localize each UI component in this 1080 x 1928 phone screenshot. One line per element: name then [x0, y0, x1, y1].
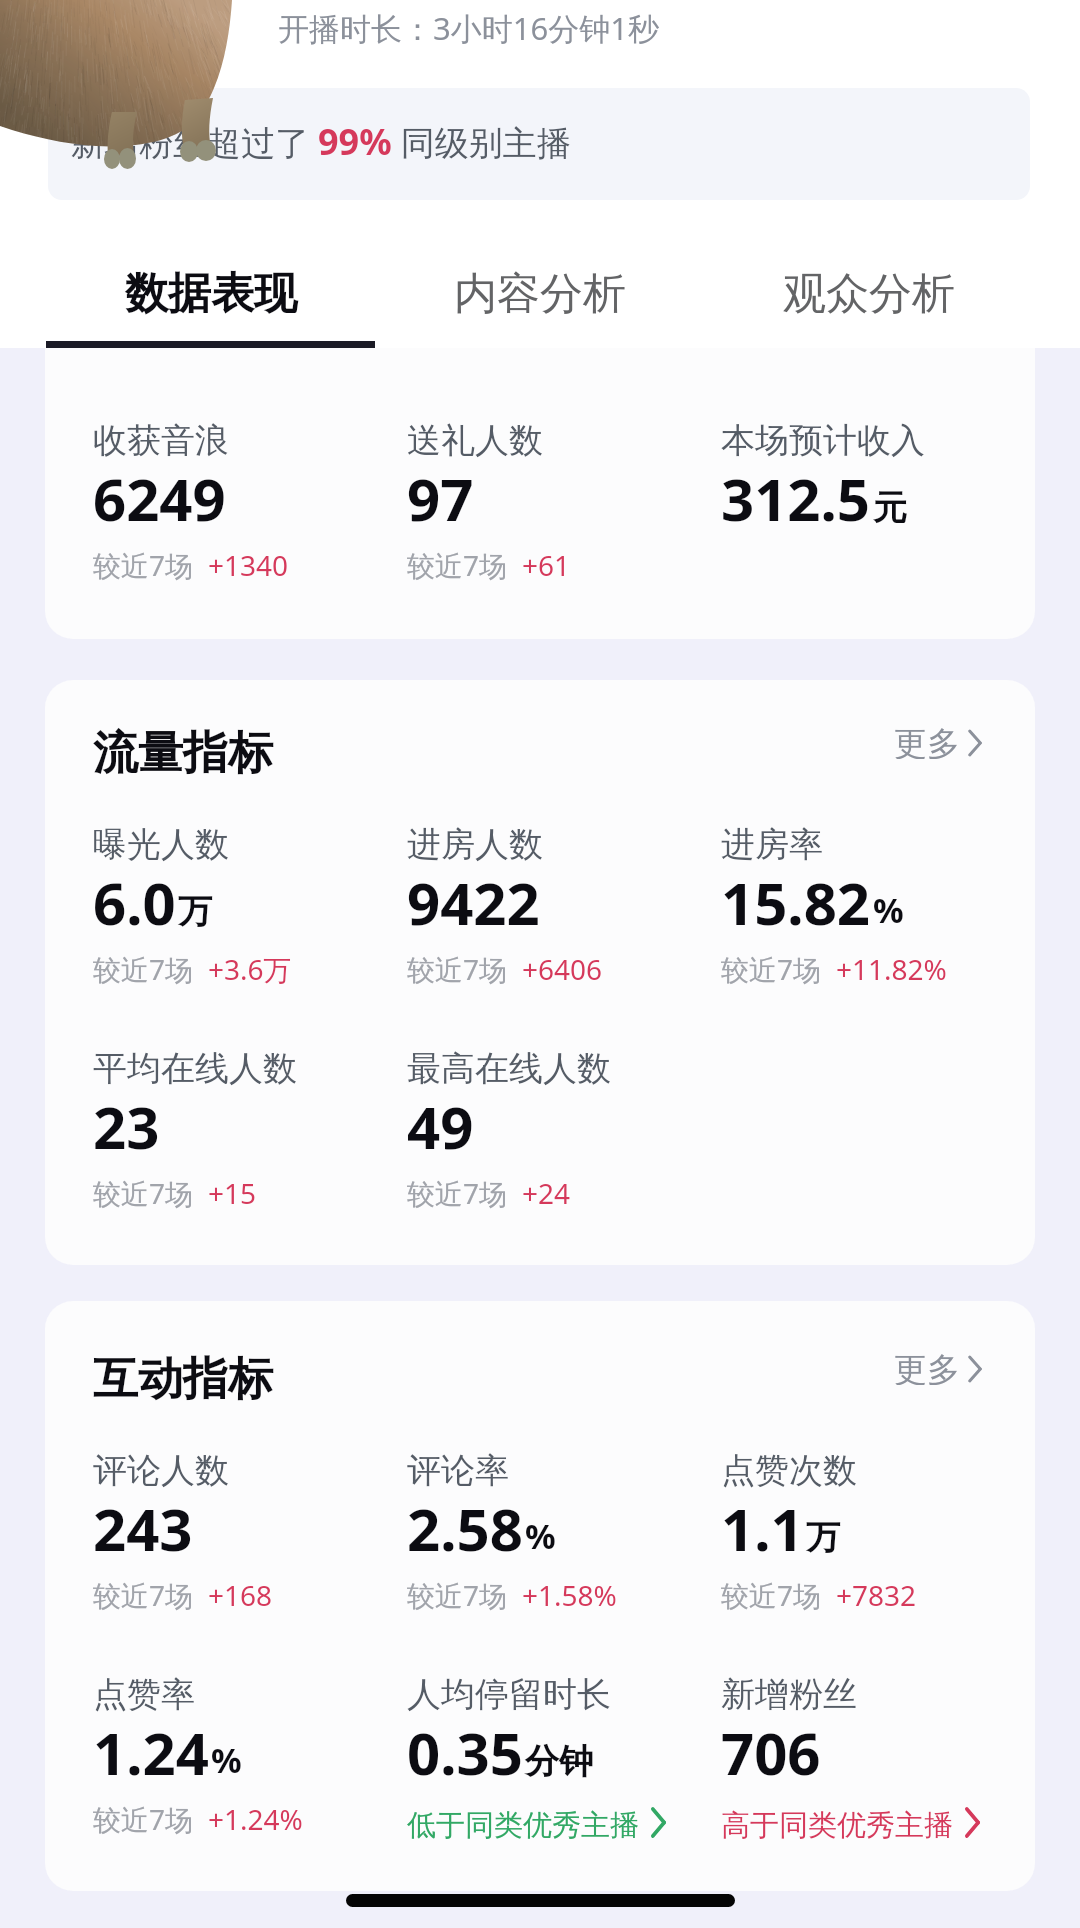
button[interactable]: 更多	[878, 1337, 998, 1397]
staticText: 更多	[894, 1349, 960, 1385]
staticText: 最高在线人数	[407, 1047, 611, 1090]
staticText: %	[525, 1513, 556, 1559]
staticText: 更多	[894, 723, 960, 759]
staticText: 流量指标	[93, 725, 273, 782]
staticText: +168	[208, 1576, 273, 1614]
staticText: 1.1	[721, 1489, 804, 1568]
staticText: 较近7场	[93, 1174, 194, 1212]
button[interactable]: 新增粉丝超过了	[48, 88, 1030, 200]
staticText: 收获音浪	[93, 419, 229, 462]
staticText: 送礼人数	[407, 419, 543, 462]
staticText: 较近7场	[93, 546, 194, 584]
staticText: +61	[522, 546, 571, 584]
staticText: %	[211, 1737, 242, 1783]
staticText: +1.58%	[522, 1576, 617, 1614]
staticText: 15.82	[721, 863, 871, 942]
staticText: 较近7场	[93, 950, 194, 988]
staticText: 706	[721, 1713, 821, 1792]
staticText: 人均停留时长	[407, 1673, 611, 1716]
staticText: 万	[178, 890, 212, 933]
staticText: 较近7场	[93, 1576, 194, 1614]
staticText: 312.5	[721, 459, 871, 538]
staticText: 较近7场	[721, 950, 822, 988]
staticText: 99%	[318, 117, 392, 166]
staticText: %	[873, 887, 904, 933]
staticText: +7832	[836, 1576, 917, 1614]
staticText: 曝光人数	[93, 823, 229, 866]
button[interactable]: 数据表现	[46, 232, 375, 348]
staticText: 49	[407, 1087, 474, 1166]
staticText: 23	[93, 1087, 160, 1166]
staticText: 点赞次数	[721, 1449, 857, 1492]
staticText: 元	[873, 486, 907, 529]
button[interactable]: 低于同类优秀主播	[407, 1807, 666, 1844]
staticText: +3.6万	[208, 950, 292, 988]
staticText: 开播时长：3小时16分钟1秒	[278, 7, 659, 49]
staticText: 平均在线人数	[93, 1047, 297, 1090]
staticText: 观众分析	[783, 267, 955, 321]
staticText: 0.35	[407, 1713, 523, 1792]
staticText: 6249	[93, 459, 226, 538]
staticText: 243	[93, 1489, 193, 1568]
staticText: 分钟	[525, 1740, 593, 1783]
staticText: 互动指标	[93, 1351, 273, 1408]
staticText: 2.58	[407, 1489, 523, 1568]
staticText: 较近7场	[721, 1576, 822, 1614]
staticText: 进房人数	[407, 823, 543, 866]
button[interactable]: 观众分析	[704, 232, 1033, 348]
staticText: 较近7场	[407, 546, 508, 584]
staticText: 同级别主播	[392, 119, 571, 165]
staticText: +15	[208, 1174, 257, 1212]
staticText: 内容分析	[454, 267, 626, 321]
button[interactable]: 高于同类优秀主播	[721, 1807, 980, 1844]
staticText: 97	[407, 459, 474, 538]
staticText: 较近7场	[407, 1576, 508, 1614]
staticText: 评论人数	[93, 1449, 229, 1492]
staticText: 点赞率	[93, 1673, 195, 1716]
button[interactable]: 内容分析	[375, 232, 704, 348]
staticText: 新增粉丝	[721, 1673, 857, 1716]
staticText: 较近7场	[407, 1174, 508, 1212]
staticText: 评论率	[407, 1449, 509, 1492]
staticText: +1340	[208, 546, 289, 584]
staticText: 较近7场	[407, 950, 508, 988]
button[interactable]: 更多	[878, 711, 998, 771]
staticText: 高于同类优秀主播	[721, 1807, 953, 1844]
staticText: +1.24%	[208, 1800, 303, 1838]
staticText: +11.82%	[836, 950, 947, 988]
staticText: 6.0	[93, 863, 176, 942]
staticText: 进房率	[721, 823, 823, 866]
staticText: 1.24	[93, 1713, 209, 1792]
staticText: 9422	[407, 863, 540, 942]
staticText: 新增粉丝超过了	[71, 119, 318, 165]
staticText: 低于同类优秀主播	[407, 1807, 639, 1844]
staticText: 数据表现	[125, 267, 297, 321]
staticText: 较近7场	[93, 1800, 194, 1838]
staticText: +6406	[522, 950, 603, 988]
staticText: 本场预计收入	[721, 419, 925, 462]
staticText: +24	[522, 1174, 571, 1212]
staticText: 万	[806, 1516, 840, 1559]
